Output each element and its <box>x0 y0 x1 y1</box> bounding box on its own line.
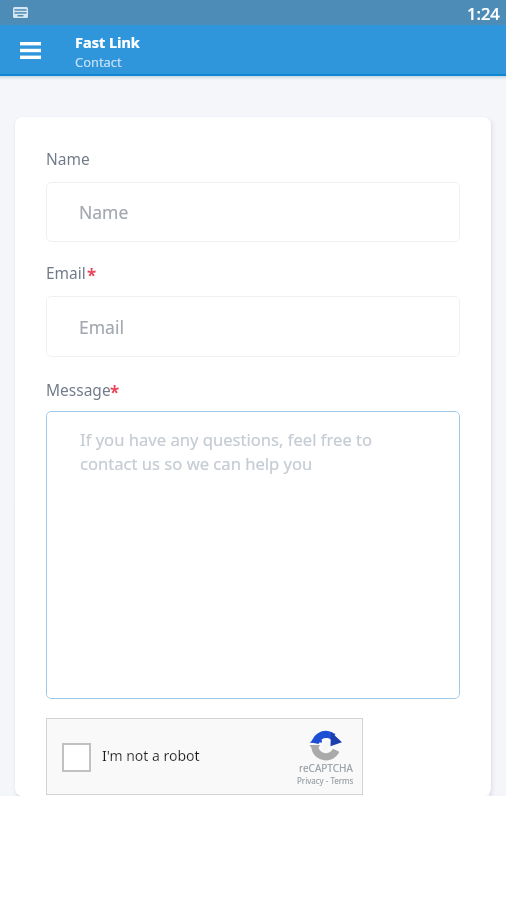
button[interactable]: Email <box>46 296 460 357</box>
staticText: Email <box>79 315 124 339</box>
staticText: If you have any questions, feel free to … <box>80 428 373 475</box>
staticText: Message <box>46 379 111 400</box>
staticText: Contact <box>75 53 122 71</box>
button[interactable]: Name <box>46 182 460 242</box>
staticText: 1:24 <box>467 2 500 24</box>
staticText: Privacy - Terms <box>297 775 354 786</box>
staticText: * <box>87 264 97 285</box>
button[interactable]: If you have any questions, feel free to … <box>46 411 460 699</box>
staticText: I'm not a robot <box>102 746 200 765</box>
button[interactable]: Open navigation menu <box>0 25 60 76</box>
staticText: Name <box>46 148 90 169</box>
staticText: Email <box>46 262 86 283</box>
staticText: reCAPTCHA <box>299 761 353 775</box>
button[interactable]: I'm not a robot <box>46 718 363 795</box>
staticText: Name <box>79 200 129 224</box>
staticText: Fast Link <box>75 32 140 52</box>
staticText: * <box>110 381 120 402</box>
